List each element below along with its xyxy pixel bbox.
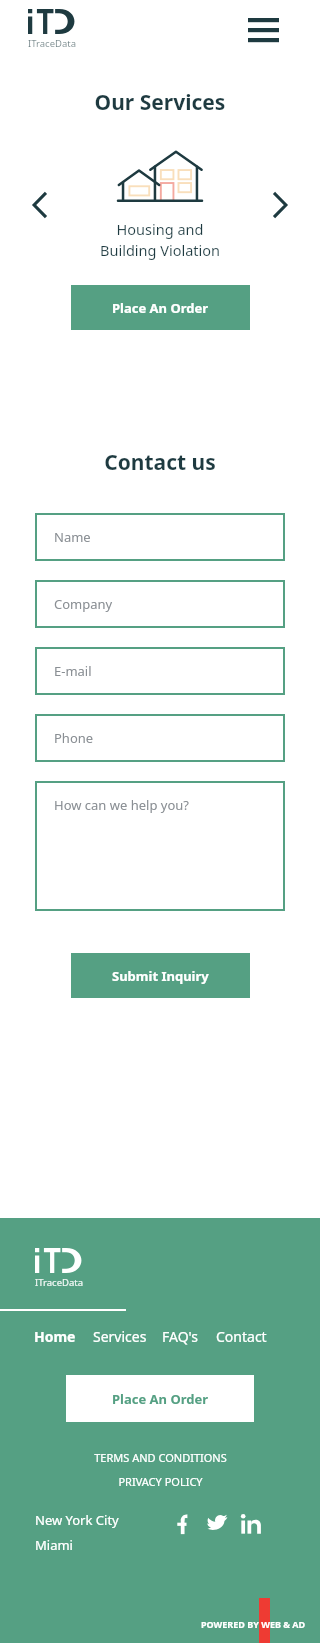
staticText: Name (54, 528, 91, 546)
staticText: Services (93, 1327, 147, 1346)
button[interactable]: Company (35, 580, 285, 628)
staticText: Phone (54, 729, 94, 747)
staticText: Company (54, 595, 113, 613)
button[interactable]: Home (34, 1327, 76, 1346)
button[interactable]: Submit Inquiry (71, 953, 250, 998)
staticText: ITraceData (35, 1276, 84, 1289)
staticText: Place An Order (112, 299, 209, 317)
button[interactable]: Contact (216, 1327, 267, 1346)
button[interactable]: ITraceData home (35, 1248, 91, 1289)
staticText: Submit Inquiry (112, 967, 209, 985)
button[interactable]: E-mail (35, 647, 285, 695)
button[interactable]: Next service (268, 193, 292, 217)
button[interactable]: PRIVACY POLICY (0, 1474, 320, 1489)
staticText: Contact (216, 1327, 267, 1346)
staticText: PRIVACY POLICY (118, 1474, 203, 1489)
staticText: E-mail (54, 662, 92, 680)
staticText: POWERED BY WEB & AD (201, 1618, 306, 1630)
staticText: Place An Order (112, 1390, 209, 1408)
button[interactable]: FAQ's (162, 1327, 199, 1346)
staticText: Home (34, 1327, 76, 1346)
staticText: ITraceData (28, 37, 77, 50)
button[interactable]: Name (35, 513, 285, 561)
button[interactable]: Facebook (172, 1513, 194, 1535)
staticText: New York City (35, 1511, 119, 1529)
button[interactable]: Open menu (248, 16, 280, 46)
staticText: Contact us (0, 448, 320, 477)
staticText: Our Services (0, 88, 320, 117)
button[interactable]: Place An Order (66, 1375, 254, 1422)
button[interactable]: Phone (35, 714, 285, 762)
button[interactable]: Twitter (206, 1513, 228, 1535)
button[interactable]: ITraceData home (28, 9, 84, 50)
button[interactable]: LinkedIn (240, 1513, 262, 1535)
staticText: Miami (35, 1536, 73, 1554)
button[interactable]: Place An Order (71, 285, 250, 330)
staticText: Housing and Building Violation (100, 219, 220, 261)
button[interactable]: Services (93, 1327, 147, 1346)
staticText: TERMS AND CONDITIONS (94, 1450, 227, 1465)
button[interactable]: Previous service (28, 193, 52, 217)
staticText: FAQ's (162, 1327, 199, 1346)
button[interactable]: TERMS AND CONDITIONS (0, 1450, 320, 1465)
staticText: How can we help you? (54, 796, 189, 814)
button[interactable]: How can we help you? (35, 781, 285, 911)
